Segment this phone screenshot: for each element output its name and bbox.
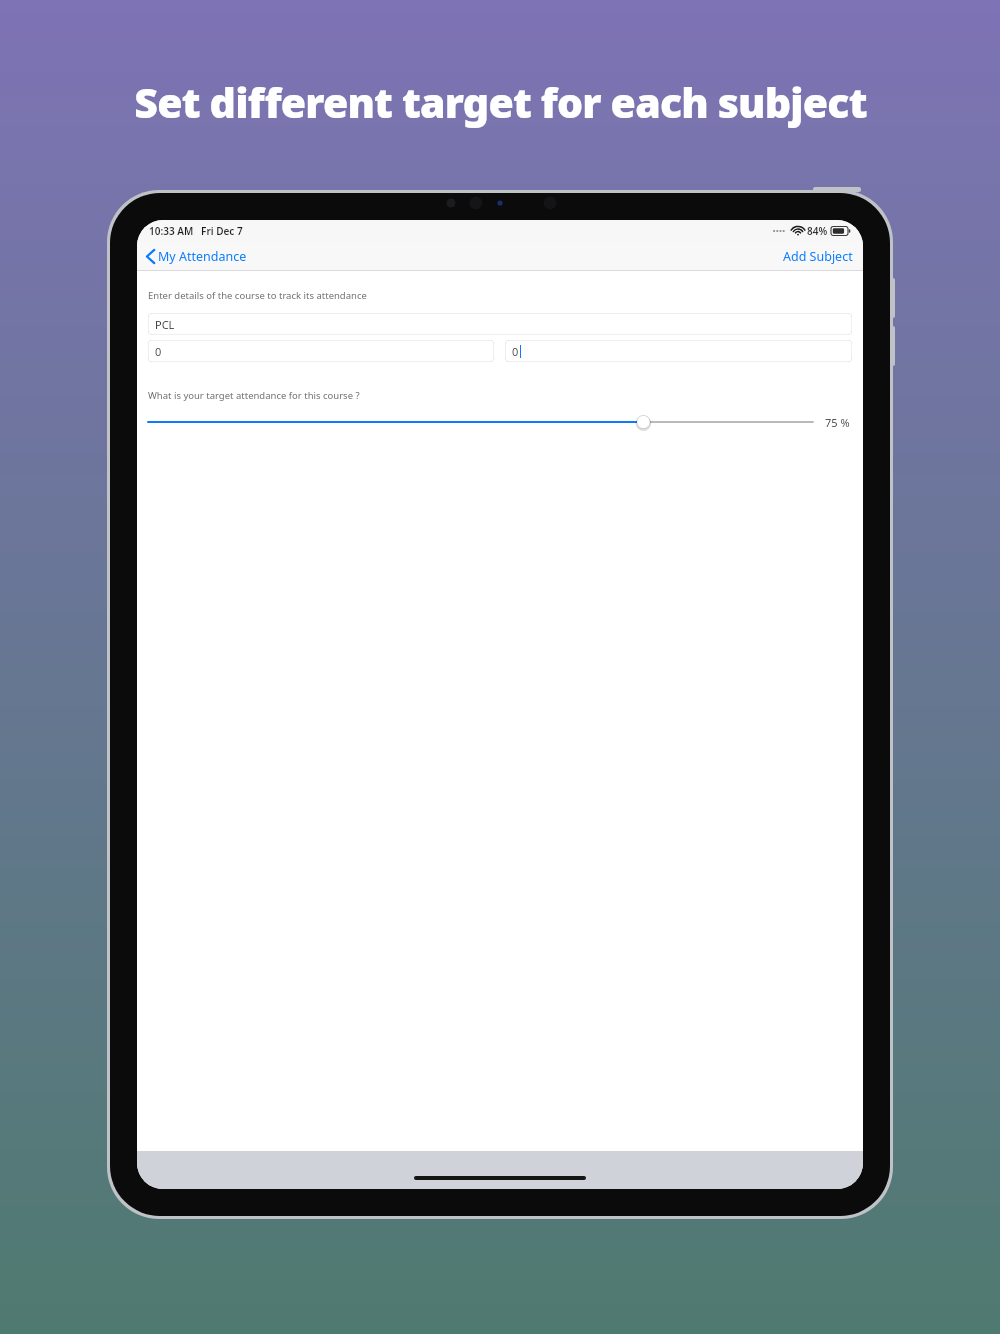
staticText: 0 (155, 344, 162, 359)
staticText: 10:33 AM (149, 224, 194, 238)
staticText: Enter details of the course to track its… (148, 289, 367, 302)
staticText: Fri Dec 7 (201, 224, 243, 238)
staticText: 0 (512, 344, 519, 359)
staticText: What is your target attendance for this … (148, 389, 360, 402)
staticText: Set different target for each subject (134, 74, 867, 130)
button[interactable]: 0 (148, 340, 494, 362)
button[interactable]: PCL (148, 313, 852, 335)
staticText: PCL (155, 317, 175, 332)
button[interactable]: 0 (505, 340, 852, 362)
staticText: Add Subject (783, 248, 853, 265)
staticText: 75 % (825, 415, 850, 430)
button[interactable]: Add Subject (773, 243, 863, 270)
button[interactable]: Target attendance slider (148, 411, 813, 433)
staticText: 84% (807, 224, 828, 238)
button[interactable]: My Attendance (137, 244, 255, 269)
staticText: My Attendance (158, 248, 247, 265)
